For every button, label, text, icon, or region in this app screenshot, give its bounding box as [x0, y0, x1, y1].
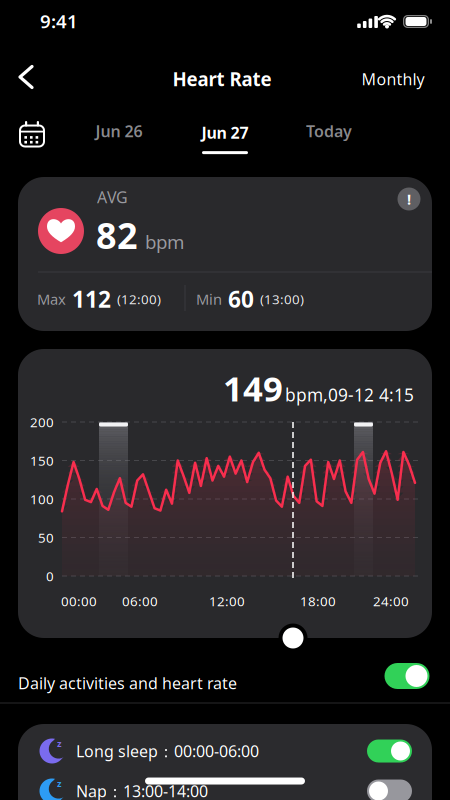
- staticText: Today: [306, 120, 352, 142]
- staticText: 50: [38, 529, 54, 546]
- staticText: AVG: [97, 186, 128, 208]
- staticText: 112: [72, 284, 111, 314]
- button[interactable]: Info: [397, 187, 420, 210]
- staticText: 149: [223, 365, 283, 411]
- button[interactable]: Today: [306, 120, 352, 142]
- staticText: 0: [46, 567, 54, 585]
- staticText: 200: [30, 413, 54, 431]
- staticText: (12:00): [117, 290, 161, 308]
- staticText: 06:00: [122, 592, 158, 610]
- button[interactable]: Monthly: [361, 68, 424, 90]
- staticText: 12:00: [209, 592, 245, 610]
- staticText: Monthly: [361, 68, 424, 90]
- staticText: Min: [196, 289, 222, 309]
- staticText: Nap：13:00-14:00: [76, 780, 208, 800]
- button[interactable]: Calendar: [15, 116, 45, 146]
- staticText: z: [57, 737, 62, 750]
- staticText: (13:00): [260, 290, 304, 308]
- staticText: !: [407, 189, 411, 209]
- button[interactable]: Nap 13:00-14:00: [38, 771, 412, 800]
- staticText: 00:00: [61, 592, 97, 610]
- button[interactable]: Long sleep 00:00-06:00: [38, 731, 412, 771]
- staticText: 24:00: [373, 592, 409, 610]
- button[interactable]: Time cursor: [278, 623, 307, 652]
- button[interactable]: Jun 26: [95, 120, 142, 142]
- button[interactable]: Jun 27: [201, 122, 248, 154]
- staticText: Max: [37, 289, 66, 309]
- staticText: Daily activities and heart rate: [18, 672, 237, 694]
- staticText: Jun 27: [201, 122, 248, 143]
- button[interactable]: Daily activities and heart rate: [384, 663, 429, 689]
- staticText: 150: [30, 452, 54, 469]
- staticText: 60: [228, 284, 254, 314]
- staticText: Heart Rate: [172, 67, 271, 91]
- staticText: bpm,09-12 4:15: [285, 383, 414, 406]
- staticText: 9:41: [40, 9, 78, 33]
- button[interactable]: Back: [12, 58, 40, 95]
- staticText: 18:00: [300, 592, 336, 610]
- staticText: bpm: [145, 229, 184, 254]
- staticText: Long sleep：00:00-06:00: [76, 740, 259, 762]
- staticText: 100: [30, 490, 54, 508]
- staticText: 82: [96, 211, 138, 259]
- staticText: z: [57, 777, 62, 790]
- staticText: Jun 26: [95, 120, 142, 142]
